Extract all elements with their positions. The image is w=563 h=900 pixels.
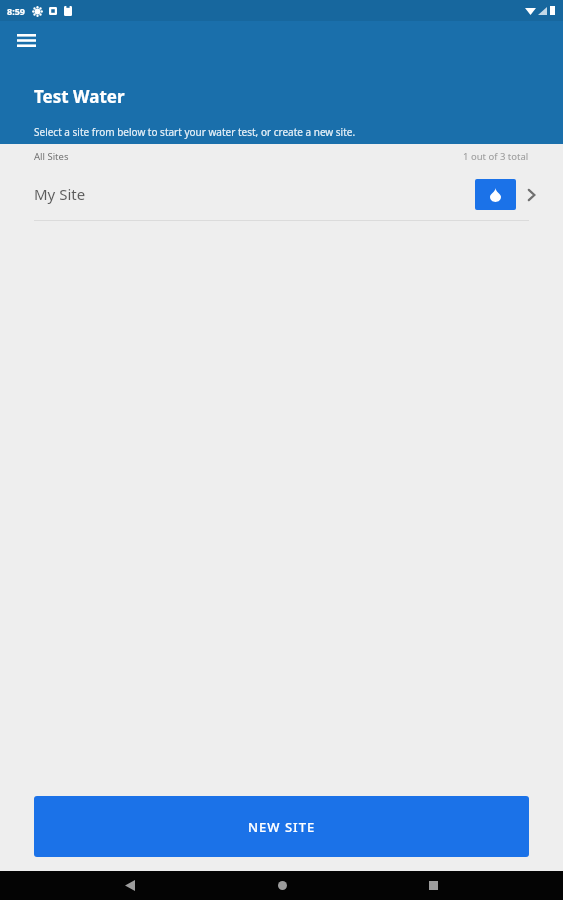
staticText: All Sites: [34, 150, 69, 163]
button[interactable]: NEW SITE: [34, 796, 529, 857]
button[interactable]: Home: [260, 871, 304, 900]
button[interactable]: Back: [108, 871, 152, 900]
staticText: My Site: [34, 184, 86, 204]
button[interactable]: Open navigation menu: [10, 24, 42, 56]
staticText: Select a site from below to start your w…: [34, 125, 356, 139]
button[interactable]: Start water test: [475, 179, 516, 210]
staticText: NEW SITE: [248, 818, 316, 836]
staticText: 8:59: [7, 5, 25, 17]
button[interactable]: Recent apps: [411, 871, 455, 900]
button[interactable]: My Site: [0, 168, 563, 220]
staticText: Test Water: [34, 85, 125, 108]
staticText: 1 out of 3 total: [463, 150, 529, 163]
